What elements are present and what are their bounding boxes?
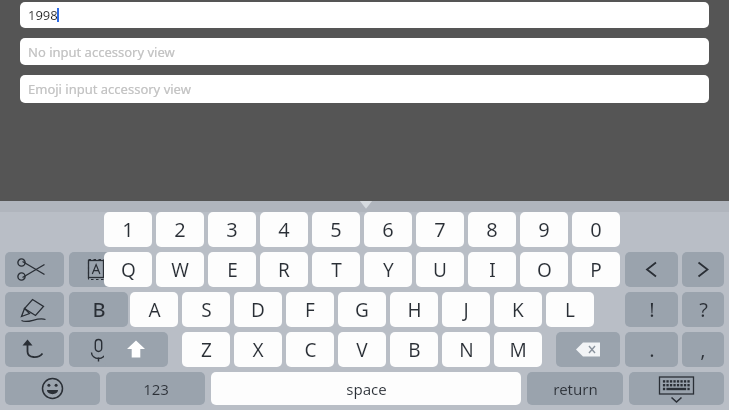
staticText: 2 (174, 216, 186, 243)
button[interactable]: Shift (104, 332, 168, 367)
staticText: space (346, 379, 387, 399)
button[interactable]: U (416, 252, 464, 287)
button[interactable]: H (390, 292, 438, 327)
button[interactable]: A (130, 292, 178, 327)
staticText: ! (649, 296, 655, 323)
button[interactable]: Select All (69, 252, 128, 287)
button[interactable]: K (494, 292, 542, 327)
staticText: 4 (278, 216, 290, 243)
staticText: P (590, 257, 602, 283)
button[interactable]: 1998 (20, 2, 709, 28)
button[interactable]: Next (682, 252, 724, 287)
staticText: H (407, 297, 422, 323)
staticText: S (201, 297, 212, 323)
button[interactable]: 4 (260, 212, 308, 247)
button[interactable]: P (572, 252, 620, 287)
staticText: , (700, 336, 706, 363)
button[interactable]: V (338, 332, 386, 367)
button[interactable]: No input accessory view (20, 38, 709, 65)
button[interactable]: E (208, 252, 256, 287)
staticText: X (252, 337, 264, 363)
staticText: ? (699, 296, 708, 323)
button[interactable]: Emoji (5, 372, 100, 405)
button[interactable]: Q (104, 252, 152, 287)
staticText: 1998 (28, 6, 58, 24)
button[interactable]: 5 (312, 212, 360, 247)
staticText: . (649, 336, 655, 363)
button[interactable]: 3 (208, 212, 256, 247)
staticText: Emoji input accessory view (28, 80, 191, 98)
button[interactable]: Previous (625, 252, 678, 287)
staticText: R (278, 257, 290, 283)
staticText: A (148, 297, 161, 323)
button[interactable]: F (286, 292, 334, 327)
button[interactable]: M (494, 332, 542, 367)
staticText: I (489, 257, 496, 283)
staticText: E (227, 257, 238, 283)
button[interactable]: B (69, 292, 128, 327)
button[interactable]: 7 (416, 212, 464, 247)
staticText: M (509, 337, 527, 363)
staticText: 6 (382, 216, 394, 243)
button[interactable]: G (338, 292, 386, 327)
button[interactable]: 9 (520, 212, 568, 247)
button[interactable]: 123 (106, 372, 205, 405)
button[interactable]: . (625, 332, 678, 367)
button[interactable]: Cut (5, 252, 64, 287)
staticText: Q (121, 257, 136, 283)
button[interactable]: ! (625, 292, 678, 327)
button[interactable]: C (286, 332, 334, 367)
button[interactable]: space (211, 372, 521, 405)
staticText: U (433, 257, 447, 283)
button[interactable]: 2 (156, 212, 204, 247)
staticText: 7 (434, 216, 446, 243)
button[interactable]: J (442, 292, 490, 327)
button[interactable]: ? (682, 292, 724, 327)
button[interactable]: Highlight (5, 292, 64, 327)
button[interactable]: D (234, 292, 282, 327)
staticText: C (304, 337, 317, 363)
staticText: B (408, 337, 421, 363)
staticText: 5 (330, 216, 342, 243)
button[interactable]: X (234, 332, 282, 367)
staticText: F (305, 297, 315, 323)
button[interactable]: 0 (572, 212, 620, 247)
staticText: 9 (538, 216, 550, 243)
button[interactable]: Z (182, 332, 230, 367)
button[interactable]: L (546, 292, 594, 327)
button[interactable]: W (156, 252, 204, 287)
staticText: 1 (122, 216, 134, 243)
button[interactable]: return (527, 372, 623, 405)
staticText: W (171, 257, 189, 283)
button[interactable]: I (468, 252, 516, 287)
staticText: L (565, 297, 575, 323)
button[interactable]: Hide keyboard (629, 372, 724, 405)
staticText: D (251, 297, 265, 323)
staticText: B (92, 296, 106, 323)
button[interactable]: Dictation (69, 332, 128, 367)
button[interactable]: T (312, 252, 360, 287)
staticText: V (356, 337, 368, 363)
staticText: return (553, 379, 598, 399)
button[interactable]: S (182, 292, 230, 327)
staticText: No input accessory view (28, 43, 175, 61)
button[interactable]: R (260, 252, 308, 287)
staticText: N (459, 337, 474, 363)
staticText: Z (201, 337, 212, 363)
button[interactable]: O (520, 252, 568, 287)
button[interactable]: Y (364, 252, 412, 287)
button[interactable]: Backspace (556, 332, 620, 367)
staticText: K (512, 297, 524, 323)
button[interactable]: B (390, 332, 438, 367)
button[interactable]: N (442, 332, 490, 367)
staticText: 8 (486, 216, 498, 243)
button[interactable]: 1 (104, 212, 152, 247)
staticText: Y (383, 257, 394, 283)
button[interactable]: Emoji input accessory view (20, 75, 709, 103)
button[interactable]: 8 (468, 212, 516, 247)
button[interactable]: 6 (364, 212, 412, 247)
button[interactable]: , (682, 332, 724, 367)
button[interactable]: Undo (5, 332, 64, 367)
staticText: J (463, 297, 469, 323)
staticText: T (331, 257, 342, 283)
